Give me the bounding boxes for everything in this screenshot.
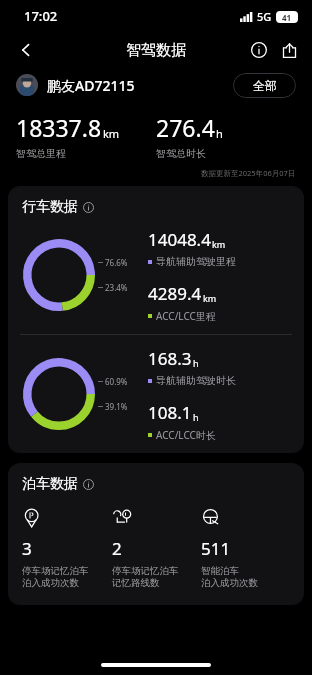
- staticText: h: [193, 357, 199, 369]
- button[interactable]: 停车场记忆泊车: [112, 507, 201, 589]
- staticText: 14048.4: [148, 228, 211, 251]
- staticText: 智驾总里程: [16, 147, 66, 160]
- staticText: 23.4%: [105, 282, 128, 293]
- staticText: h: [193, 411, 199, 423]
- staticText: 60.9%: [105, 376, 128, 387]
- staticText: 智能泊车: [201, 565, 239, 577]
- button[interactable]: 停车场记忆泊车: [22, 507, 112, 589]
- button[interactable]: Share: [274, 35, 304, 65]
- staticText: 511: [201, 537, 231, 560]
- staticText: 276.4: [156, 112, 215, 143]
- staticText: 导航辅助驾驶时长: [156, 374, 236, 387]
- staticText: 18337.8: [16, 112, 102, 143]
- staticText: 全部: [253, 78, 277, 93]
- staticText: 智驾总时长: [156, 147, 206, 160]
- staticText: ACC/LCC里程: [156, 309, 216, 323]
- staticText: ACC/LCC时长: [156, 428, 216, 442]
- other: 智能泊车: [201, 507, 222, 528]
- staticText: km: [103, 126, 120, 141]
- button[interactable]: [16, 74, 38, 96]
- staticText: 行车数据: [22, 198, 78, 216]
- button[interactable]: 全部: [233, 73, 296, 98]
- staticText: 泊入成功次数: [201, 577, 258, 589]
- staticText: 导航辅助驾驶里程: [156, 255, 236, 268]
- staticText: 停车场记忆泊车: [112, 565, 179, 577]
- staticText: 鹏友AD72115: [47, 76, 135, 95]
- staticText: 17:02: [24, 7, 58, 25]
- staticText: 168.3: [148, 347, 192, 370]
- staticText: 智驾数据: [126, 41, 186, 60]
- staticText: 39.1%: [105, 401, 128, 412]
- button[interactable]: 泊车数据: [22, 475, 304, 493]
- staticText: 泊车数据: [22, 475, 78, 493]
- staticText: 41: [282, 12, 292, 23]
- button[interactable]: Back: [10, 34, 42, 66]
- button[interactable]: 行车数据: [22, 198, 304, 216]
- staticText: 108.1: [148, 401, 192, 424]
- staticText: h: [216, 126, 223, 141]
- staticText: 5G: [257, 9, 272, 24]
- staticText: 4289.4: [148, 282, 202, 305]
- other: 停车场记忆泊车: [112, 507, 133, 528]
- staticText: 2: [112, 537, 122, 560]
- other: 停车场记忆泊车: [22, 507, 43, 528]
- staticText: 记忆路线数: [112, 577, 160, 589]
- button[interactable]: Info: [244, 35, 274, 65]
- staticText: km: [212, 238, 226, 250]
- staticText: 3: [22, 537, 32, 560]
- staticText: 泊入成功次数: [22, 577, 79, 589]
- staticText: 停车场记忆泊车: [22, 565, 89, 577]
- staticText: km: [203, 292, 217, 304]
- staticText: 76.6%: [105, 257, 128, 268]
- button[interactable]: 智能泊车: [201, 507, 290, 589]
- staticText: 数据更新至2025年06月07日: [201, 168, 296, 178]
